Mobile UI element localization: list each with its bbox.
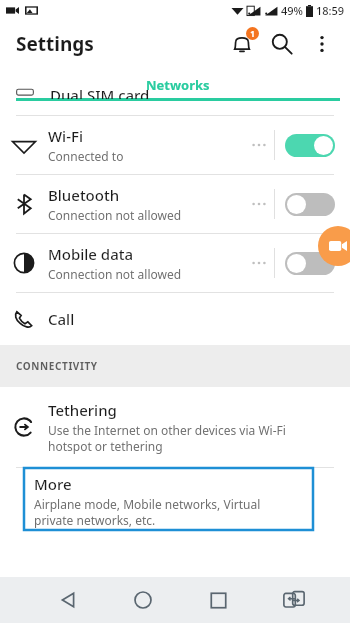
button[interactable]: Bluetooth xyxy=(0,175,350,233)
staticText: 1 xyxy=(250,28,255,39)
staticText: 18:59 xyxy=(316,3,345,18)
button[interactable]: Notifications xyxy=(222,24,262,64)
button[interactable]: Home xyxy=(105,577,180,623)
staticText: Connection not allowed xyxy=(48,266,182,282)
staticText: Settings xyxy=(16,31,94,57)
button[interactable]: Networks xyxy=(16,68,340,101)
button[interactable]: Screen recorder xyxy=(318,226,350,266)
staticText: Tethering xyxy=(48,400,117,420)
button[interactable]: Call xyxy=(0,293,350,345)
staticText: 49% xyxy=(281,3,303,18)
button[interactable]: Tethering xyxy=(0,387,350,467)
button[interactable]: Recent apps xyxy=(180,577,256,623)
staticText: Networks xyxy=(146,76,210,94)
staticText: Call xyxy=(48,309,75,329)
staticText: Mobile data xyxy=(48,244,134,264)
button[interactable]: Wi-Fi xyxy=(0,116,350,174)
staticText: Wi-Fi xyxy=(48,126,83,146)
button[interactable]: Mobile data xyxy=(0,234,350,292)
staticText: Airplane mode, Mobile networks, Virtual … xyxy=(34,496,261,529)
button[interactable]: Off xyxy=(285,252,335,275)
staticText: Bluetooth xyxy=(48,185,120,205)
button[interactable]: More xyxy=(24,468,313,530)
staticText: Dual SIM card xyxy=(50,85,150,99)
button[interactable]: Dual window xyxy=(256,577,332,623)
button[interactable]: More options xyxy=(302,24,342,64)
button[interactable]: Off xyxy=(285,193,335,216)
staticText: CONNECTIVITY xyxy=(16,359,98,373)
staticText: Connection not allowed xyxy=(48,207,182,223)
button[interactable]: Back xyxy=(30,577,105,623)
staticText: Connected to xyxy=(48,148,124,164)
staticText: More xyxy=(34,474,72,494)
button[interactable]: Search xyxy=(262,24,302,64)
staticText: Use the Internet on other devices via Wi… xyxy=(48,422,286,455)
button[interactable]: On xyxy=(285,134,335,157)
